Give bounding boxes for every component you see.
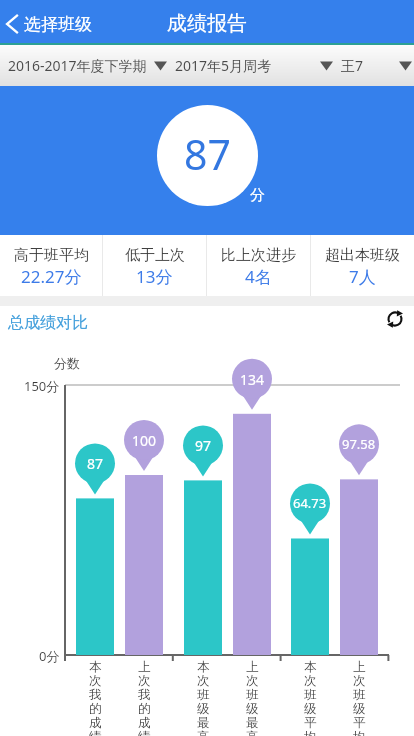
staticText: 13分 [136, 265, 173, 288]
staticText: 高 [197, 729, 210, 736]
button[interactable]: 比上次进步 [207, 235, 310, 296]
staticText: 4名 [245, 265, 272, 288]
staticText: 的 [138, 701, 151, 715]
staticText: 平 [304, 715, 317, 729]
staticText: 97.58 [342, 435, 376, 453]
staticText: 低于上次 [125, 246, 185, 265]
staticText: 次 [304, 673, 317, 687]
staticText: 级 [197, 701, 210, 715]
staticText: 均 [353, 729, 366, 736]
staticText: 次 [353, 673, 366, 687]
staticText: 成 [138, 715, 151, 729]
staticText: 64.73 [293, 494, 327, 512]
staticText: 高于班平均 [14, 246, 89, 265]
staticText: 比上次进步 [221, 246, 296, 265]
staticText: 级 [353, 701, 366, 715]
staticText: 本 [304, 659, 317, 673]
staticText: 成绩报告 [167, 11, 247, 36]
staticText: 2016-2017年度下学期 [8, 56, 147, 75]
staticText: 我 [138, 687, 151, 701]
staticText: 上 [138, 659, 151, 673]
staticText: 本 [89, 659, 102, 673]
staticText: 我 [89, 687, 102, 701]
staticText: 选择班级 [24, 14, 92, 35]
button[interactable]: 2017年5月周考 [175, 56, 412, 75]
staticText: 总成绩对比 [8, 313, 88, 333]
button[interactable]: 2016-2017年度下学期 [8, 56, 167, 75]
staticText: 级 [246, 701, 259, 715]
staticText: 87 [87, 454, 104, 473]
staticText: 100 [132, 431, 157, 450]
staticText: 0分 [39, 647, 60, 663]
staticText: 87 [184, 126, 231, 182]
staticText: 150分 [24, 377, 60, 393]
staticText: 级 [304, 701, 317, 715]
staticText: 134 [240, 370, 265, 389]
button[interactable]: 选择班级 [0, 12, 92, 36]
staticText: 绩 [89, 729, 102, 736]
staticText: 平 [353, 715, 366, 729]
button[interactable] [385, 309, 405, 329]
staticText: 2017年5月周考 [175, 56, 272, 75]
staticText: 22.27分 [21, 265, 82, 288]
staticText: 次 [246, 673, 259, 687]
staticText: 最 [246, 715, 259, 729]
staticText: 最 [197, 715, 210, 729]
staticText: 分数 [54, 355, 80, 370]
staticText: 成 [89, 715, 102, 729]
staticText: 班 [197, 687, 210, 701]
staticText: 次 [197, 673, 210, 687]
staticText: 97 [195, 436, 212, 455]
staticText: 本 [197, 659, 210, 673]
button[interactable]: 高于班平均 [0, 235, 102, 296]
staticText: 王7 [341, 56, 364, 75]
staticText: 班 [304, 687, 317, 701]
staticText: 上 [353, 659, 366, 673]
staticText: 超出本班级 [325, 246, 400, 265]
staticText: 7人 [349, 265, 376, 288]
staticText: 班 [353, 687, 366, 701]
staticText: 分 [250, 186, 265, 205]
staticText: 绩 [138, 729, 151, 736]
button[interactable]: 低于上次 [103, 235, 206, 296]
button[interactable]: 超出本班级 [311, 235, 414, 296]
button[interactable]: 87 [157, 105, 258, 206]
staticText: 次 [89, 673, 102, 687]
staticText: 均 [304, 729, 317, 736]
staticText: 次 [138, 673, 151, 687]
staticText: 高 [246, 729, 259, 736]
staticText: 上 [246, 659, 259, 673]
staticText: 的 [89, 701, 102, 715]
staticText: 班 [246, 687, 259, 701]
